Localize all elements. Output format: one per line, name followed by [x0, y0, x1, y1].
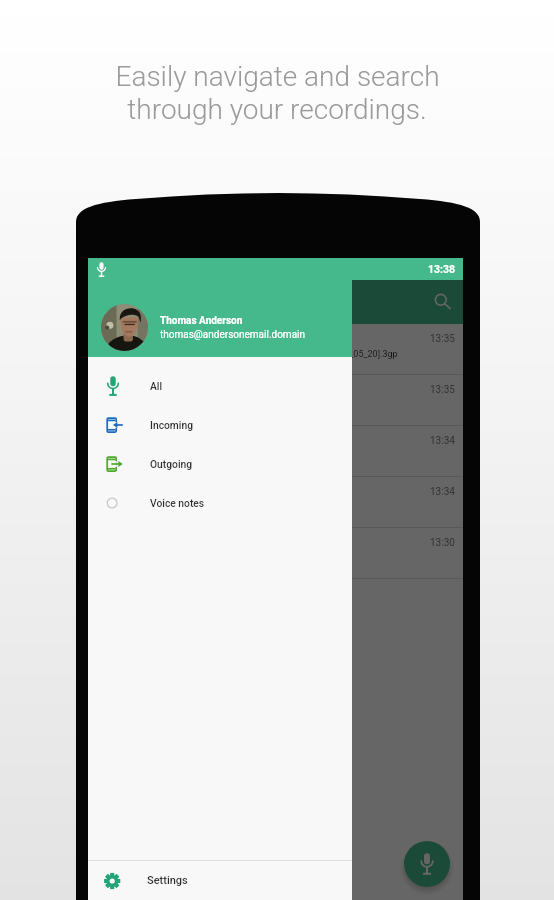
button[interactable]: Voice notes: [88, 483, 352, 522]
staticText: thomas@andersonemail.domain: [160, 329, 306, 341]
staticText: Thomas Anderson: [160, 315, 243, 327]
staticText: 13:34: [430, 486, 455, 498]
staticText: All: [150, 380, 163, 392]
button[interactable]: Incoming: [88, 405, 352, 444]
staticText: Voice notes: [150, 497, 205, 509]
button[interactable]: 13:35: [88, 324, 463, 375]
button[interactable]: All: [88, 366, 352, 405]
staticText: through your recordings.: [127, 93, 427, 126]
button[interactable]: 13:35: [88, 375, 463, 426]
button[interactable]: Record: [404, 841, 450, 887]
staticText: Easily navigate and search: [115, 60, 440, 93]
staticText: Outgoing: [150, 458, 193, 470]
staticText: Incoming call 00123456789 [2016_05_20].3…: [104, 502, 289, 513]
staticText: Recording_voice_memo_sample_file_namedx_…: [104, 349, 398, 360]
staticText: Settings: [147, 874, 188, 887]
staticText: 13:35: [430, 384, 455, 396]
staticText: 13:34: [430, 435, 455, 447]
staticText: 13:35: [430, 333, 455, 345]
staticText: Outgoing call 00987654321 [2016_05_20].3…: [104, 451, 288, 462]
staticText: Incoming: [150, 419, 194, 431]
button[interactable]: Settings: [88, 861, 352, 900]
button[interactable]: 13:30: [88, 528, 463, 579]
button[interactable]: 13:34: [88, 426, 463, 477]
staticText: 13:30: [430, 537, 455, 549]
staticText: 13:38: [428, 263, 456, 275]
button[interactable]: Search: [425, 285, 459, 319]
button[interactable]: 13:34: [88, 477, 463, 528]
button[interactable]: Outgoing: [88, 444, 352, 483]
